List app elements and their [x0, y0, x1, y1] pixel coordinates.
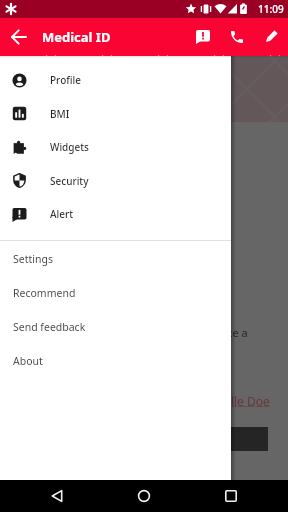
staticText: About	[13, 354, 43, 368]
button[interactable]: About	[0, 344, 231, 378]
staticText: Send feedback	[13, 320, 86, 334]
button[interactable]: Recommend	[0, 276, 231, 310]
staticText: Widgets	[50, 140, 89, 154]
staticText: 11:09	[258, 2, 284, 16]
button[interactable]: Widgets	[0, 130, 231, 164]
button[interactable]: Alert	[0, 197, 231, 231]
staticText: Settings	[13, 252, 53, 266]
button[interactable]	[187, 480, 274, 512]
button[interactable]: Security	[0, 164, 231, 197]
staticText: BMI	[50, 107, 70, 121]
button[interactable]: BMI	[0, 97, 231, 130]
staticText: to place a	[198, 325, 248, 340]
staticText: Profile	[50, 73, 81, 87]
button[interactable]	[100, 480, 187, 512]
staticText: Michelle Doe	[197, 393, 270, 409]
button[interactable]	[14, 480, 100, 512]
staticText: Medical ID	[42, 28, 111, 46]
staticText: Recommend	[13, 286, 76, 300]
staticText: Security	[50, 174, 89, 188]
button[interactable]	[0, 18, 38, 56]
button[interactable]: Settings	[0, 242, 231, 276]
button[interactable]: Profile	[0, 63, 231, 97]
button[interactable]	[254, 18, 288, 56]
button[interactable]	[220, 18, 254, 56]
staticText: Alert	[50, 207, 74, 221]
button[interactable]	[186, 18, 220, 56]
button[interactable]: Send feedback	[0, 310, 231, 344]
